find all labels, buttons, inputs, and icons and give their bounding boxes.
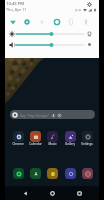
staticText: Gallery	[65, 142, 75, 146]
button[interactable]: Photos	[78, 166, 96, 180]
button[interactable]: Music	[43, 129, 61, 149]
staticText: Music	[48, 142, 57, 146]
button[interactable]: Quick toggle 6	[80, 16, 92, 28]
button[interactable]: Settings	[78, 129, 96, 149]
staticText: Calendar	[29, 142, 42, 146]
button[interactable]: Calendar	[26, 129, 44, 149]
button[interactable]: Files	[43, 166, 61, 180]
button[interactable]: Chrome	[9, 129, 27, 149]
button[interactable]: Auto brightness	[85, 29, 94, 38]
button[interactable]: Contacts	[26, 166, 44, 180]
staticText: ● ●	[75, 8, 82, 12]
button[interactable]: Brightness	[7, 29, 17, 39]
button[interactable]: Quick toggle 3	[36, 16, 48, 28]
staticText: Thu, Apr 11	[6, 7, 27, 12]
button[interactable]: Quick toggle 5	[65, 16, 77, 28]
button[interactable]: Quick toggle 2	[21, 16, 33, 28]
button[interactable]: Gallery	[61, 129, 79, 149]
button[interactable]: Quick toggle 4	[51, 16, 63, 28]
button[interactable]: Recents	[73, 186, 85, 200]
button[interactable]: Camera	[61, 166, 79, 180]
staticText: Settings	[81, 142, 93, 146]
button[interactable]: Settings	[85, 0, 94, 9]
button[interactable]: Quick toggle 1	[7, 16, 19, 28]
button[interactable]: Search	[10, 110, 95, 119]
button[interactable]: Volume	[7, 40, 17, 50]
button[interactable]: Sound settings	[85, 40, 94, 49]
button[interactable]: Phone	[9, 166, 27, 180]
button[interactable]: Back	[19, 186, 31, 200]
staticText: Say "Hey Google"	[20, 113, 50, 118]
staticText: 10:43 PM	[6, 1, 25, 7]
button[interactable]: Home	[46, 186, 58, 200]
staticText: Chrome	[12, 142, 24, 146]
